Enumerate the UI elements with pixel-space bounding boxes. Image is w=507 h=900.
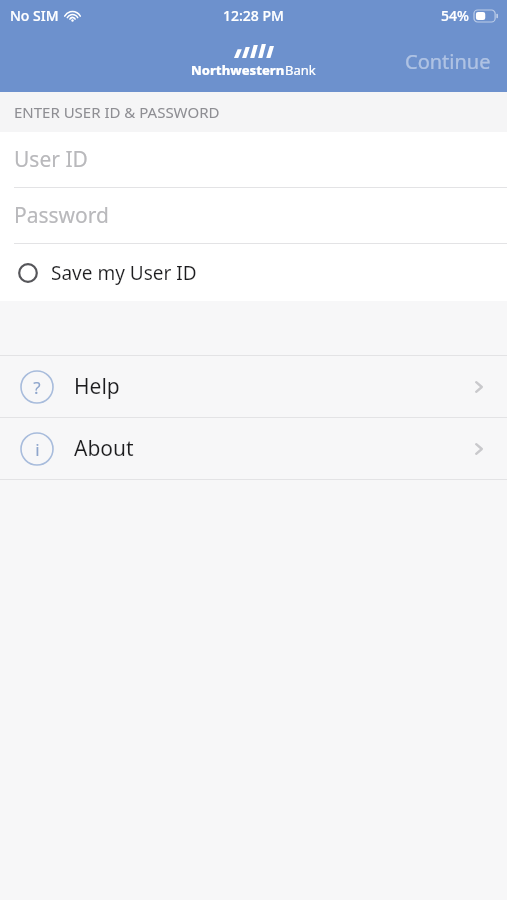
button[interactable]: Continue [389, 40, 507, 83]
staticText: Help [74, 372, 120, 401]
staticText: User ID [14, 145, 88, 174]
staticText: ENTER USER ID & PASSWORD [14, 102, 220, 122]
button[interactable]: i [0, 418, 507, 479]
staticText: i [35, 438, 40, 461]
staticText: Continue [405, 48, 491, 75]
staticText: Save my User ID [51, 260, 197, 286]
staticText: ? [33, 376, 41, 399]
staticText: Bank [285, 61, 316, 79]
staticText: Northwestern [191, 61, 285, 79]
staticText: 12:28 PM [223, 6, 284, 25]
button[interactable]: ? [0, 356, 507, 417]
other: Open [469, 439, 489, 459]
staticText: Password [14, 201, 109, 230]
staticText: 54% [441, 6, 469, 25]
button[interactable]: User ID [0, 132, 507, 187]
staticText: About [74, 434, 134, 463]
button[interactable]: Password [0, 188, 507, 243]
staticText: No SIM [10, 6, 59, 25]
button[interactable]: Save my User ID [0, 244, 507, 301]
other: Open [469, 377, 489, 397]
